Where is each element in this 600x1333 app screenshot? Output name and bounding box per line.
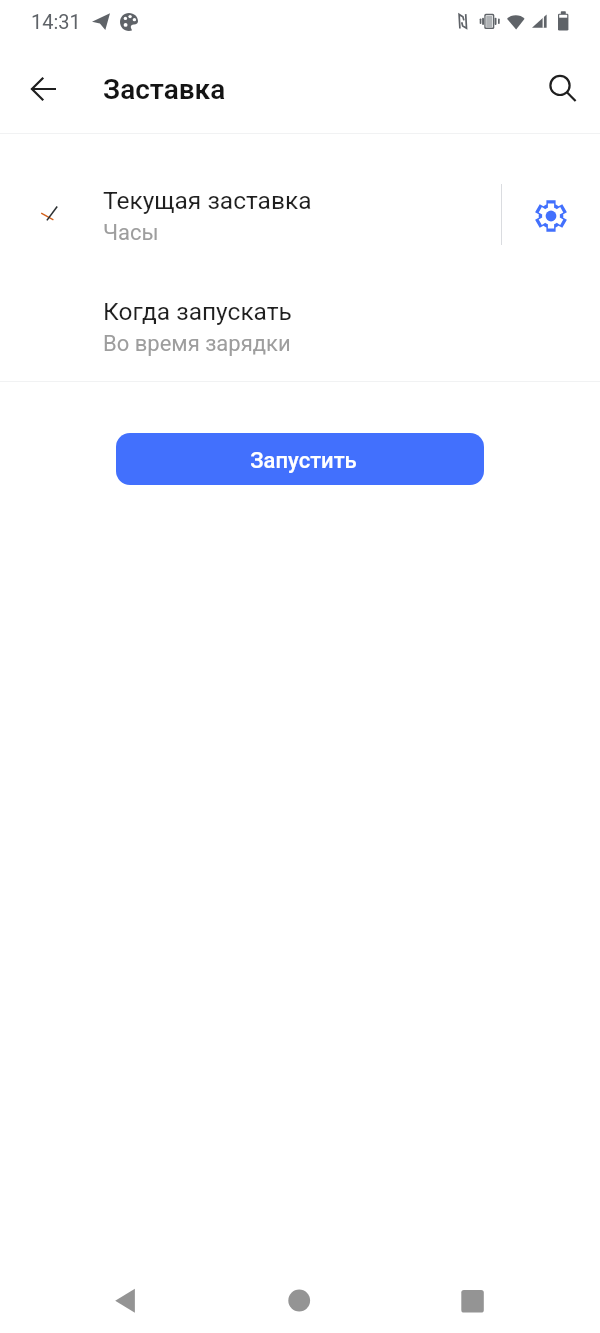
- staticText: Запустить: [250, 448, 357, 474]
- staticText: 14:31: [31, 10, 81, 33]
- button[interactable]: Запустить: [116, 433, 484, 485]
- button[interactable]: Когда запускать: [0, 279, 600, 375]
- button[interactable]: Текущая заставка: [0, 168, 501, 264]
- staticText: Заставка: [103, 73, 226, 106]
- staticText: Когда запускать: [103, 297, 292, 326]
- button[interactable]: Screensaver settings: [501, 168, 600, 264]
- staticText: Во время зарядки: [103, 331, 291, 357]
- button[interactable]: Back: [91, 1275, 160, 1327]
- button[interactable]: Recents: [438, 1275, 507, 1327]
- button[interactable]: Home: [265, 1275, 334, 1327]
- button[interactable]: Search: [536, 61, 592, 117]
- staticText: Часы: [103, 220, 159, 246]
- button[interactable]: Back: [15, 61, 71, 117]
- staticText: Текущая заставка: [103, 186, 312, 215]
